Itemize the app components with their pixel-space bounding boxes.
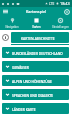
button[interactable]: Einstellungen — [48, 16, 72, 30]
staticText: Karten — [32, 25, 41, 29]
button[interactable]: ALPEN UND HÖHENZÜGE — [2, 75, 69, 86]
staticText: Kartenspiel — [26, 9, 47, 14]
button[interactable]: KARTEN-ABSCHNITTE — [11, 32, 69, 43]
button[interactable]: LÄNDER KARTE — [2, 103, 69, 114]
staticText: Navigation — [5, 25, 19, 29]
button[interactable]: BUNDESLÄNDER DEUTSCHLAND — [2, 47, 69, 58]
button[interactable]: Info — [0, 32, 11, 43]
staticText: KARTEN-ABSCHNITTE — [21, 36, 55, 40]
staticText: LÄNDER KARTE — [12, 107, 36, 111]
staticText: BUNDESLÄNDER DEUTSCHLAND — [12, 51, 63, 55]
staticText: LTE — [49, 2, 55, 6]
staticText: SPRACHEN UND DIALEKTE — [12, 93, 54, 97]
button[interactable]: SPRACHEN UND DIALEKTE — [2, 89, 69, 100]
button[interactable]: Navigation — [0, 16, 24, 30]
staticText: Einstellungen — [52, 25, 69, 29]
staticText: 18:43 — [60, 1, 70, 6]
button[interactable]: Menu — [0, 7, 11, 16]
staticText: GEWÄSSER — [12, 65, 29, 69]
staticText: ALPEN UND HÖHENZÜGE — [12, 79, 52, 83]
button[interactable]: GEWÄSSER — [2, 61, 69, 72]
button[interactable]: Info — [61, 7, 72, 16]
button[interactable]: Karten — [24, 16, 48, 30]
